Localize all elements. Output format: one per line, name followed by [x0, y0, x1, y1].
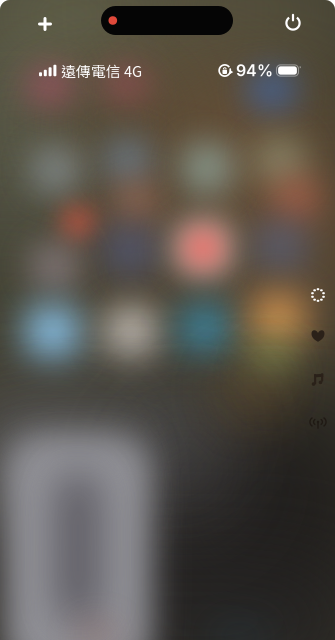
staticText: 94% — [236, 61, 273, 80]
button[interactable]: Add — [31, 10, 59, 38]
button[interactable]: In progress — [309, 286, 327, 304]
button[interactable]: Health — [310, 328, 326, 344]
button[interactable]: Power — [279, 9, 307, 37]
button[interactable]: AirPlay — [308, 414, 328, 432]
staticText: 遠傳電信 4G — [61, 60, 142, 81]
button[interactable]: Now playing — [310, 371, 326, 389]
